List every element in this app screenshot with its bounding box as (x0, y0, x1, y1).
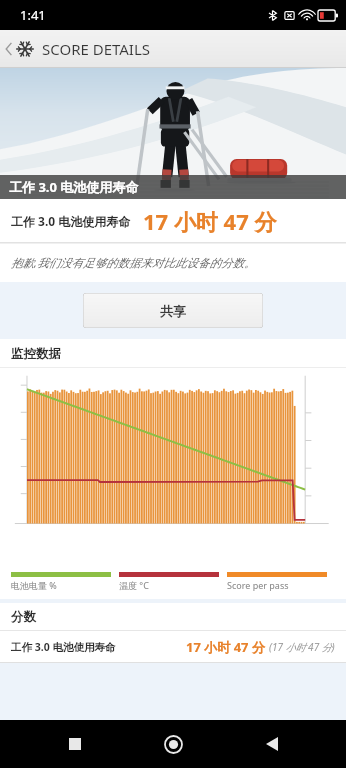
staticText: (17 小时 47 分) (269, 640, 335, 654)
button[interactable]: 共享 (83, 293, 263, 328)
staticText: 温度 °C (119, 579, 149, 591)
staticText: 工作 3.0 电池使用寿命 (11, 213, 131, 229)
staticText: 17 小时 47 分 (143, 206, 277, 236)
staticText: SCORE DETAILS (42, 39, 151, 59)
staticText: 1:41 (20, 6, 46, 24)
staticText: 监控数据 (11, 346, 61, 362)
button[interactable]: 工作 3.0 电池使用寿命 (0, 631, 346, 663)
button[interactable]: Recents (51, 720, 99, 768)
button[interactable]: Home (149, 720, 197, 768)
button[interactable]: Back (248, 720, 296, 768)
staticText: Score per pass (227, 579, 289, 591)
staticText: 电池电量 % (11, 579, 57, 591)
staticText: 分数 (11, 609, 36, 625)
staticText: 共享 (160, 303, 186, 319)
button[interactable]: Back (3, 35, 155, 63)
staticText: 抱歉,我们没有足够的数据来对比此设备的分数。 (11, 255, 256, 271)
staticText: 工作 3.0 电池使用寿命 (11, 640, 116, 654)
staticText: 17 小时 47 分 (186, 638, 265, 656)
staticText: 工作 3.0 电池使用寿命 (9, 178, 139, 196)
